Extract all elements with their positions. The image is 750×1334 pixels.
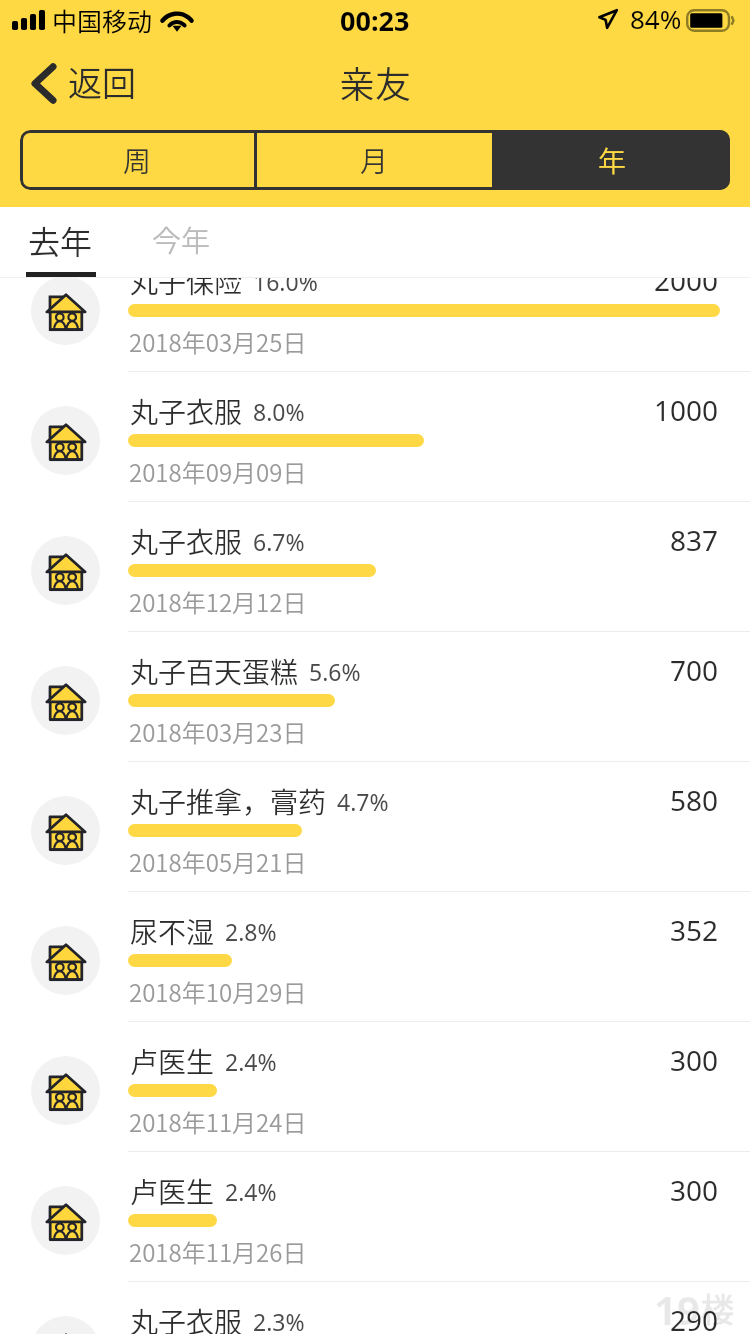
staticText: 5.6% <box>309 656 361 687</box>
staticText: 楼 <box>701 1284 734 1332</box>
staticText: 6.7% <box>253 526 305 557</box>
staticText: 卢医生 <box>130 1041 215 1082</box>
button[interactable]: 丸子衣服 <box>0 502 750 632</box>
staticText: 2018年12月12日 <box>129 584 307 619</box>
staticText: 2018年11月26日 <box>129 1234 307 1269</box>
staticText: 2018年11月24日 <box>129 1104 307 1139</box>
staticText: 4.7% <box>337 786 389 817</box>
button[interactable]: 尿不湿 <box>0 892 750 1022</box>
button[interactable]: 丸子衣服 <box>0 372 750 502</box>
staticText: 2018年05月21日 <box>129 844 307 879</box>
staticText: 290 <box>670 1301 719 1334</box>
staticText: 去年 <box>28 217 93 263</box>
staticText: 2.3% <box>253 1306 305 1334</box>
staticText: 丸子衣服 <box>130 391 243 432</box>
staticText: 今年 <box>152 218 211 260</box>
staticText: 19lou.com <box>654 1330 736 1334</box>
button[interactable]: 丸子衣服 <box>0 1282 750 1334</box>
button[interactable]: 丸子百天蛋糕 <box>0 632 750 762</box>
button[interactable]: 今年 <box>121 207 241 278</box>
staticText: 中国移动 <box>52 2 153 38</box>
button[interactable]: 丸子推拿，膏药 <box>0 762 750 892</box>
staticText: 丸子推拿，膏药 <box>130 781 327 822</box>
staticText: 周 <box>123 140 152 181</box>
staticText: 2000 <box>654 261 719 299</box>
other: 返回 <box>33 64 55 103</box>
staticText: 2.4% <box>225 1176 277 1207</box>
staticText: 年 <box>598 140 627 181</box>
staticText: 丸子保险 <box>130 261 243 302</box>
staticText: 2018年03月23日 <box>129 714 307 749</box>
staticText: 352 <box>670 911 719 949</box>
staticText: 580 <box>670 781 719 819</box>
staticText: 丸子衣服 <box>130 1301 243 1334</box>
staticText: 尿不湿 <box>130 911 215 952</box>
staticText: 亲友 <box>339 56 412 108</box>
staticText: 00:23 <box>340 2 410 39</box>
staticText: 2018年03月25日 <box>129 324 307 359</box>
staticText: 丸子百天蛋糕 <box>130 651 299 692</box>
staticText: 300 <box>670 1171 719 1209</box>
button[interactable]: 返回 <box>0 53 154 114</box>
staticText: 2018年09月09日 <box>129 454 307 489</box>
staticText: 返回 <box>68 57 136 106</box>
staticText: 月 <box>360 140 389 181</box>
staticText: 16.0% <box>253 266 318 297</box>
staticText: 丸子衣服 <box>130 521 243 562</box>
staticText: 卢医生 <box>130 1171 215 1212</box>
staticText: 2.4% <box>225 1046 277 1077</box>
button[interactable]: 周 <box>20 130 254 190</box>
button[interactable]: 丸子保险 <box>0 242 750 372</box>
staticText: 1000 <box>654 391 719 429</box>
staticText: 2018年10月29日 <box>129 974 307 1009</box>
staticText: 19 <box>654 1282 700 1334</box>
staticText: 837 <box>670 521 719 559</box>
staticText: 84% <box>630 1 682 36</box>
button[interactable]: 卢医生 <box>0 1152 750 1282</box>
staticText: 700 <box>670 651 719 689</box>
button[interactable]: 卢医生 <box>0 1022 750 1152</box>
button[interactable]: 年 <box>495 130 730 190</box>
button[interactable]: 月 <box>257 130 492 190</box>
button[interactable]: 去年 <box>0 207 121 278</box>
staticText: 2.8% <box>225 916 277 947</box>
staticText: 300 <box>670 1041 719 1079</box>
staticText: 8.0% <box>253 396 305 427</box>
